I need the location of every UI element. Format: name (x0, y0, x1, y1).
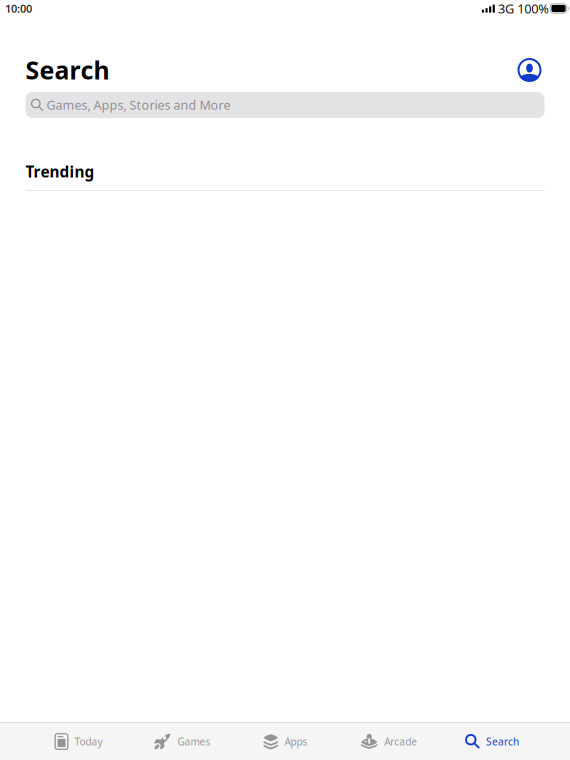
button[interactable]: Arcade (337, 723, 440, 760)
button[interactable]: Games (130, 723, 234, 760)
staticText: Apps (284, 735, 307, 748)
staticText: Arcade (384, 735, 417, 748)
button[interactable]: Account (514, 55, 544, 85)
staticText: Trending (25, 161, 94, 182)
staticText: 100% (517, 0, 549, 17)
staticText: Search (25, 53, 109, 87)
staticText: 10:00 (5, 1, 32, 16)
button[interactable]: Today (27, 723, 130, 760)
staticText: 3G (498, 0, 514, 17)
staticText: Today (74, 735, 102, 748)
button[interactable]: Search (440, 723, 544, 760)
staticText: Games, Apps, Stories and More (47, 96, 231, 114)
button[interactable]: Apps (234, 723, 337, 760)
staticText: Games (177, 735, 210, 748)
button[interactable]: Games, Apps, Stories and More (25, 92, 544, 118)
staticText: Search (486, 735, 519, 748)
